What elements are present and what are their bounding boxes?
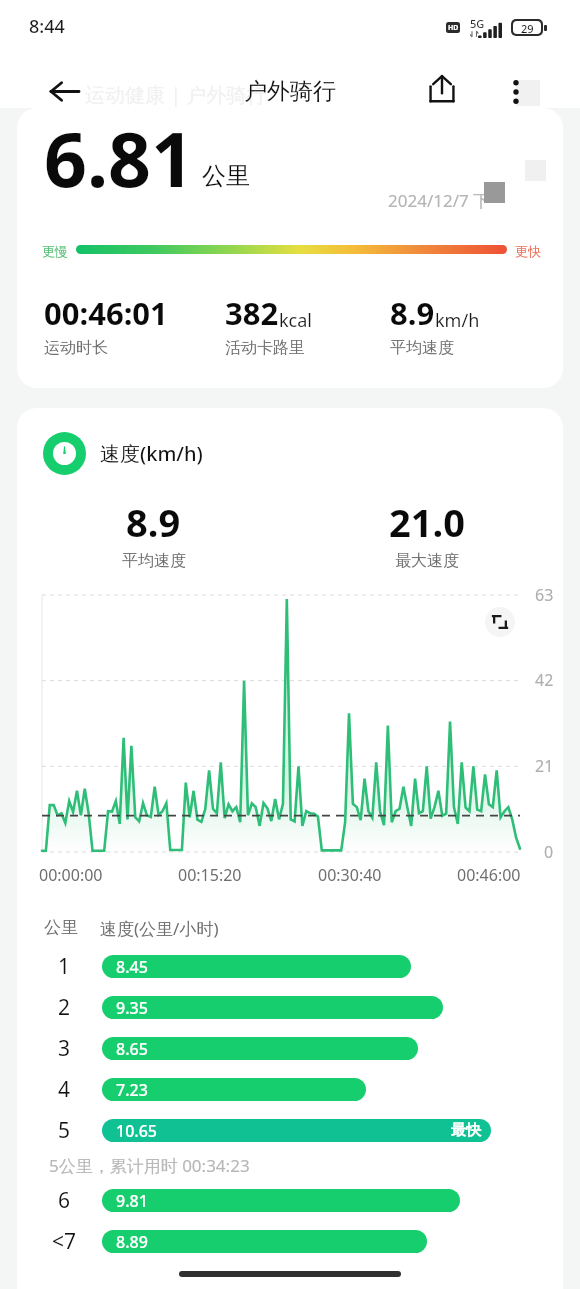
button[interactable]: 6 xyxy=(44,1180,546,1221)
staticText: 4 xyxy=(58,1075,71,1104)
staticText: 6.81 xyxy=(44,108,194,209)
staticText: 00:46:00 xyxy=(457,864,521,886)
staticText: HD xyxy=(448,23,459,33)
staticText: 63 xyxy=(535,584,554,606)
button[interactable]: 2 xyxy=(44,987,546,1028)
staticText: 1 xyxy=(58,952,71,981)
staticText: 21.0 xyxy=(389,496,465,548)
staticText: km/h xyxy=(435,308,480,333)
button[interactable]: Share xyxy=(429,70,492,113)
staticText: <7 xyxy=(52,1227,77,1256)
staticText: 00:46:01 xyxy=(44,292,168,334)
staticText: 速度(公里/小时) xyxy=(100,917,219,940)
button[interactable]: Back xyxy=(40,70,88,113)
staticText: 8.45 xyxy=(116,956,148,978)
button[interactable]: 5 xyxy=(44,1110,546,1151)
staticText: 8.9 xyxy=(390,292,435,334)
button[interactable]: 1 xyxy=(44,946,546,987)
staticText: 最大速度 xyxy=(395,551,459,571)
staticText: 5 xyxy=(58,1116,71,1145)
staticText: 最快 xyxy=(451,1121,481,1140)
staticText: 运动时长 xyxy=(44,338,108,358)
staticText: 5G xyxy=(470,16,485,31)
staticText: 更慢 xyxy=(42,243,68,259)
staticText: 8.9 xyxy=(126,496,181,548)
staticText: 公里 xyxy=(202,161,250,191)
staticText: 0 xyxy=(544,841,554,863)
staticText: 7.23 xyxy=(116,1079,148,1101)
button[interactable]: <7 xyxy=(44,1221,546,1262)
staticText: 6 xyxy=(58,1186,71,1215)
staticText: 8.65 xyxy=(116,1038,148,1060)
button[interactable]: More options xyxy=(492,70,540,113)
button[interactable]: 3 xyxy=(44,1028,546,1069)
staticText: 公里 xyxy=(44,917,78,938)
staticText: 2 xyxy=(58,993,71,1022)
staticText: 10.65 xyxy=(116,1120,157,1142)
staticText: 42 xyxy=(535,669,554,691)
staticText: 00:15:20 xyxy=(178,864,242,886)
staticText: 00:30:40 xyxy=(318,864,382,886)
staticText: 户外骑行 xyxy=(244,77,336,106)
staticText: 9.81 xyxy=(116,1190,148,1212)
staticText: 更快 xyxy=(515,243,541,259)
staticText: kcal xyxy=(279,308,312,333)
staticText: 5公里，累计用时 00:34:23 xyxy=(49,1154,250,1177)
staticText: 8.89 xyxy=(116,1231,148,1253)
staticText: 00:00:00 xyxy=(39,864,103,886)
staticText: 活动卡路里 xyxy=(225,338,305,358)
staticText: 速度(km/h) xyxy=(100,440,203,467)
staticText: 平均速度 xyxy=(390,338,454,358)
staticText: 平均速度 xyxy=(122,551,186,571)
staticText: 9.35 xyxy=(116,997,148,1019)
staticText: 382 xyxy=(225,292,279,334)
staticText: 29 xyxy=(521,21,534,34)
staticText: 2024/12/7 下 xyxy=(388,189,491,212)
staticText: 运动健康 | 户外骑行 xyxy=(85,81,267,108)
staticText: 21 xyxy=(535,755,554,777)
staticText: 8:44 xyxy=(29,14,65,39)
button[interactable]: 4 xyxy=(44,1069,546,1110)
staticText: 3 xyxy=(58,1034,71,1063)
button[interactable]: Fullscreen chart xyxy=(485,607,515,637)
